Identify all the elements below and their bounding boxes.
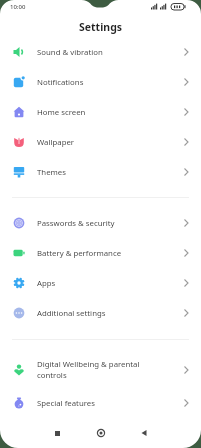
staticText: Digital Wellbeing & parental [37,359,140,370]
button[interactable]: Passwords & security [0,208,201,238]
staticText: controls [37,370,67,381]
staticText: Settings [79,20,123,34]
button[interactable] [50,426,64,440]
button[interactable]: Digital Wellbeing & parental [0,351,201,388]
staticText: 10:00 [10,3,26,11]
button[interactable]: Battery & performance [0,238,201,268]
staticText: Notifications [37,77,84,88]
button[interactable]: Wallpaper [0,127,201,157]
button[interactable]: Additional settings [0,298,201,328]
button[interactable]: Themes [0,157,201,187]
staticText: Passwords & security [37,218,115,229]
button[interactable]: Notifications [0,67,201,97]
staticText: Apps [37,278,56,289]
staticText: Additional settings [37,308,106,319]
button[interactable]: Apps [0,268,201,298]
staticText: Themes [37,167,66,178]
button[interactable]: Sound & vibration [0,37,201,67]
staticText: Home screen [37,107,86,118]
button[interactable]: Special features [0,388,201,418]
button[interactable]: Home screen [0,97,201,127]
button[interactable] [137,426,151,440]
button[interactable] [94,426,108,440]
staticText: Wallpaper [37,137,75,148]
staticText: Battery & performance [37,248,122,259]
staticText: Sound & vibration [37,47,103,58]
staticText: Special features [37,398,95,409]
